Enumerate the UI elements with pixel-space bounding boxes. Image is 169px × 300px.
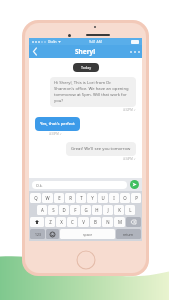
button[interactable]: J [103,205,113,215]
staticText: W [45,195,50,201]
staticText: H [95,207,99,213]
button[interactable]: return [116,229,141,239]
button[interactable]: Backspace [126,217,141,227]
staticText: A [41,207,44,213]
staticText: B [94,219,97,225]
button[interactable]: F [70,205,80,215]
staticText: G [84,207,88,213]
staticText: F [74,207,77,213]
staticText: Z [49,219,52,225]
staticText: 4:34PM ✓ [123,157,136,161]
staticText: return [123,232,134,237]
button[interactable]: Great! We'll see you tomorrow [66,142,136,156]
button[interactable]: Y [87,193,97,203]
button[interactable]: Emoji [46,229,59,239]
button[interactable]: R [65,193,75,203]
button[interactable]: I [109,193,119,203]
button[interactable]: More options [128,45,142,58]
staticText: Dialin [48,40,57,44]
staticText: space [83,232,93,237]
button[interactable]: B [90,217,101,227]
button[interactable]: Z [45,217,55,227]
staticText: P [135,195,138,201]
staticText: S [52,207,55,213]
staticText: O.k. [36,183,43,188]
button[interactable]: T [76,193,86,203]
staticText: 9:41 AM [89,39,102,44]
staticText: Yes, that's perfect [40,121,75,127]
staticText: V [82,219,85,225]
staticText: D [62,207,66,213]
button[interactable]: G [81,205,91,215]
staticText: T [80,195,83,201]
staticText: 4:32PM ✓ [123,108,136,112]
button[interactable]: O [120,193,130,203]
button[interactable]: U [98,193,108,203]
button[interactable]: E [54,193,64,203]
staticText: Sheryl [75,47,96,56]
button[interactable]: Q [30,193,41,203]
button[interactable]: X [56,217,66,227]
button[interactable]: L [125,205,135,215]
staticText: M [118,219,122,225]
staticText: 4:33PM ✓ [49,132,62,136]
staticText: Y [91,195,94,201]
staticText: E [58,195,61,201]
staticText: Great! We'll see you tomorrow [71,146,131,152]
button[interactable]: H [92,205,102,215]
staticText: O [123,195,127,201]
button[interactable]: O.k. [32,181,127,189]
button[interactable]: A [37,205,47,215]
button[interactable]: Shift [30,217,44,227]
button[interactable]: Send [130,180,139,189]
staticText: I [113,195,115,201]
staticText: U [101,195,105,201]
button[interactable]: C [67,217,77,227]
staticText: Q [34,195,38,201]
staticText: 123 [35,232,41,237]
button[interactable]: 123 [30,229,45,239]
button[interactable]: W [42,193,53,203]
button[interactable]: S [48,205,58,215]
button[interactable]: Hi Sheryl, This is Lori from Dr. Shannon… [50,77,136,107]
button[interactable]: Yes, that's perfect [35,117,80,131]
staticText: C [71,219,74,225]
button[interactable]: Home [76,250,96,270]
staticText: L [129,207,132,213]
button[interactable]: D [59,205,69,215]
button[interactable]: space [60,229,115,239]
button[interactable]: P [131,193,141,203]
button[interactable]: N [102,217,113,227]
button[interactable]: Today [73,63,99,72]
staticText: N [106,219,110,225]
button[interactable]: V [78,217,89,227]
staticText: R [69,195,72,201]
button[interactable]: K [114,205,124,215]
staticText: Today [81,65,91,70]
staticText: Hi Sheryl, This is Lori from Dr. Shannon… [54,80,132,104]
staticText: X [60,219,63,225]
staticText: K [118,207,121,213]
button[interactable]: M [114,217,125,227]
button[interactable]: Back [29,45,41,58]
staticText: J [107,207,109,213]
